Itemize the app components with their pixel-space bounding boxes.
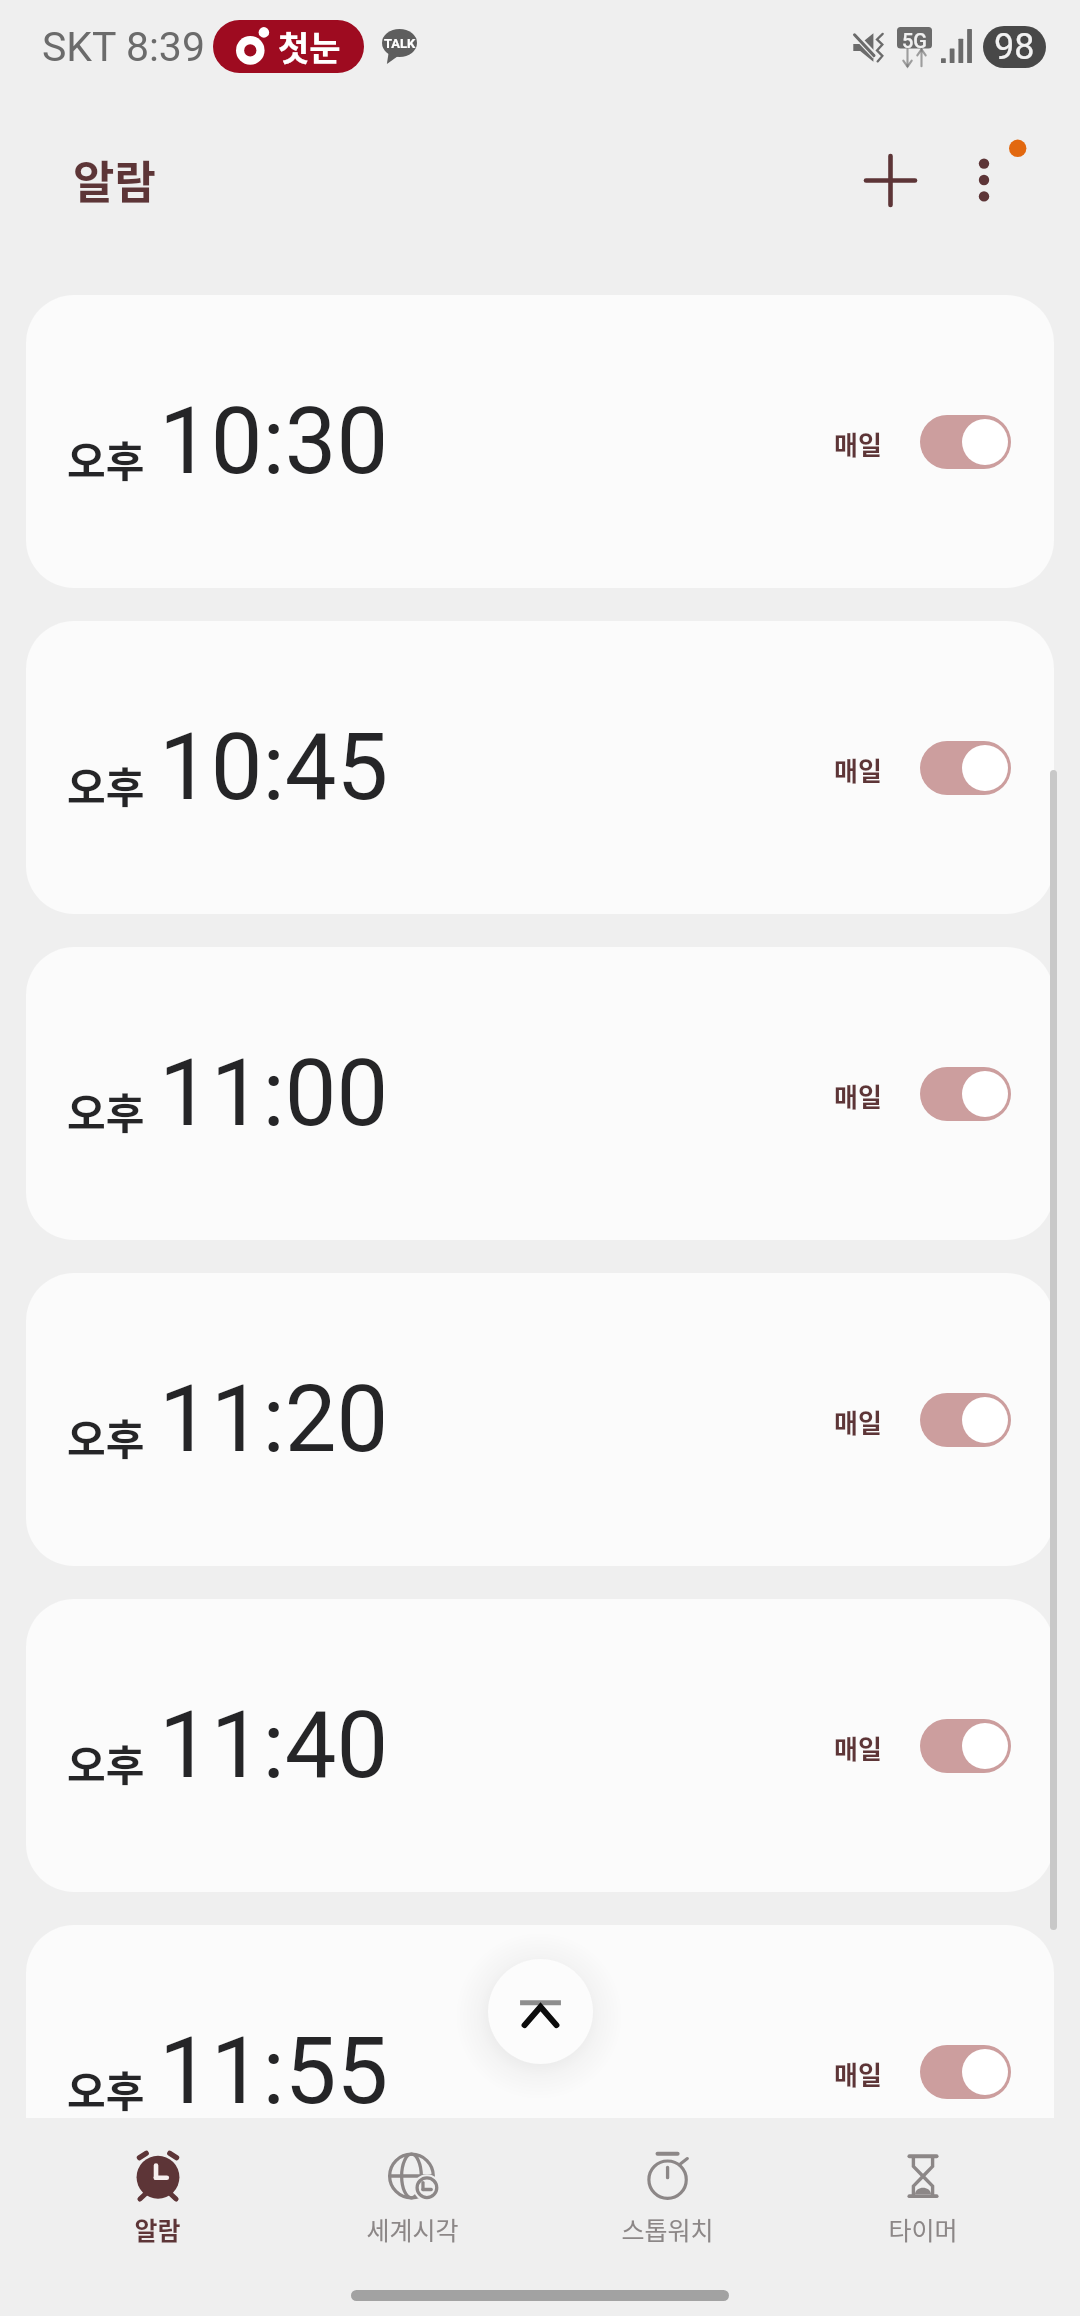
button[interactable]: Scroll to top xyxy=(488,1959,593,2064)
staticText: 오후 xyxy=(67,1080,145,1141)
staticText: 11:20 xyxy=(159,1366,389,1474)
button[interactable]: Alarm on/off xyxy=(920,1393,1011,1447)
staticText: 11:55 xyxy=(159,2018,389,2126)
staticText: 매일 xyxy=(834,425,882,463)
button[interactable]: Add alarm xyxy=(836,126,944,234)
staticText: 98 xyxy=(994,26,1035,68)
button[interactable]: 오후 xyxy=(26,947,1054,1240)
staticText: 세계시각 xyxy=(366,2211,459,2247)
staticText: 오후 xyxy=(67,2058,145,2119)
button[interactable]: 오후 xyxy=(26,1925,1054,2218)
staticText: 알람 xyxy=(73,147,156,212)
staticText: 오후 xyxy=(67,1406,145,1467)
button[interactable]: 오후 xyxy=(26,295,1054,588)
staticText: 11:00 xyxy=(159,1040,389,1148)
button[interactable]: 오후 xyxy=(26,621,1054,914)
button[interactable]: 오후 xyxy=(26,1273,1054,1566)
staticText: 오후 xyxy=(67,1732,145,1793)
staticText: TALK xyxy=(384,36,416,51)
staticText: 5G xyxy=(902,29,927,52)
staticText: 매일 xyxy=(834,751,882,789)
staticText: SKT 8:39 xyxy=(42,23,205,71)
button[interactable]: 세계시각 xyxy=(285,2118,540,2316)
staticText: 11:40 xyxy=(159,1692,389,1800)
button[interactable]: 타이머 xyxy=(795,2118,1050,2316)
staticText: 알람 xyxy=(134,2211,181,2247)
staticText: 10:45 xyxy=(159,714,389,822)
button[interactable]: Alarm on/off xyxy=(920,415,1011,469)
staticText: 타이머 xyxy=(888,2211,958,2247)
button[interactable]: 스톱워치 xyxy=(540,2118,795,2316)
staticText: 매일 xyxy=(834,1729,882,1767)
button[interactable]: Alarm on/off xyxy=(920,2045,1011,2099)
staticText: 오후 xyxy=(67,428,145,489)
staticText: 매일 xyxy=(834,1077,882,1115)
staticText: 오후 xyxy=(67,754,145,815)
button[interactable]: More options xyxy=(930,126,1038,234)
button[interactable]: 알람 xyxy=(30,2118,285,2316)
button[interactable]: Alarm on/off xyxy=(920,1719,1011,1773)
staticText: 스톱워치 xyxy=(621,2211,714,2247)
button[interactable]: Alarm on/off xyxy=(920,741,1011,795)
staticText: 첫눈 xyxy=(278,22,341,71)
staticText: 매일 xyxy=(834,1403,882,1441)
button[interactable]: Alarm on/off xyxy=(920,1067,1011,1121)
staticText: 매일 xyxy=(834,2055,882,2093)
staticText: 10:30 xyxy=(159,388,389,496)
button[interactable]: 오후 xyxy=(26,1599,1054,1892)
